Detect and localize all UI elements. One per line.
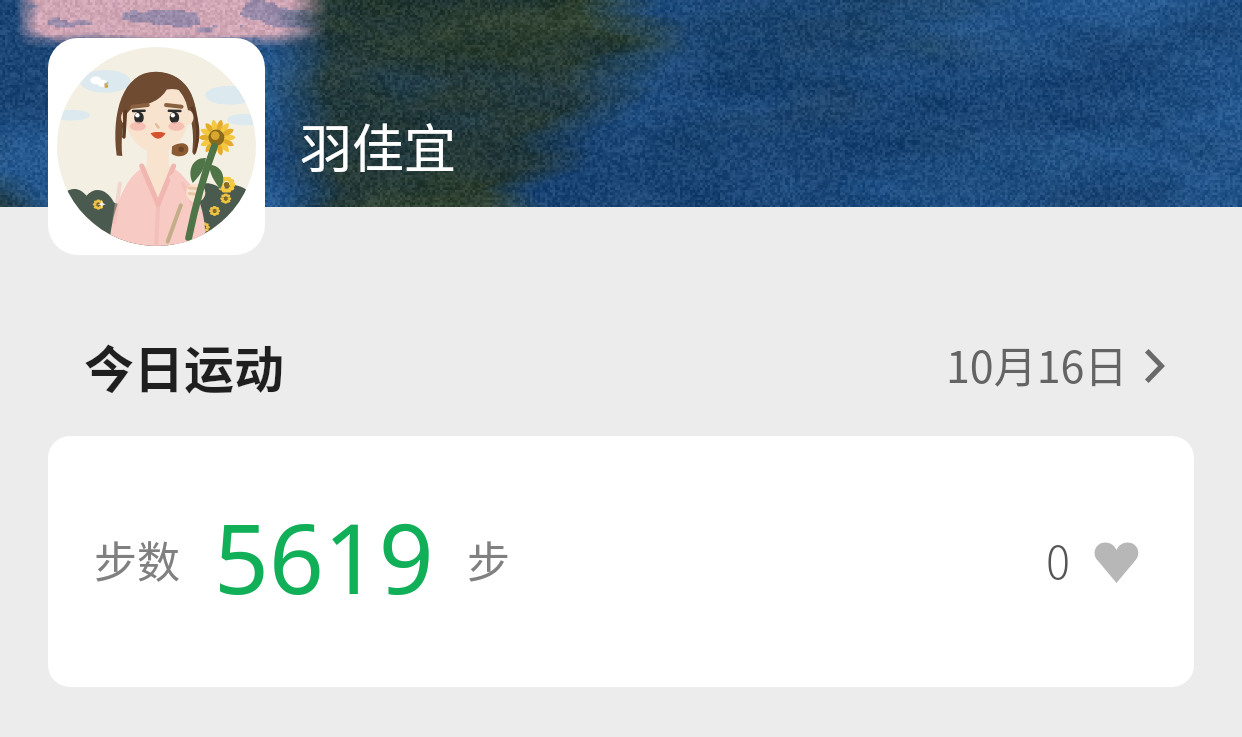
button[interactable]: 步数 bbox=[48, 436, 1194, 687]
button[interactable]: 羽佳宜 bbox=[300, 108, 457, 183]
staticText: 羽佳宜 bbox=[300, 108, 457, 183]
staticText: 5619 bbox=[214, 491, 434, 622]
button[interactable]: Profile photo bbox=[48, 38, 265, 255]
staticText: 步 bbox=[467, 528, 510, 590]
staticText: 步数 bbox=[94, 528, 180, 590]
button[interactable]: Likes bbox=[1093, 542, 1140, 583]
staticText: 今日运动 bbox=[84, 330, 284, 402]
staticText: 0 bbox=[1046, 527, 1071, 592]
button[interactable]: 10月16日 bbox=[946, 327, 1242, 405]
staticText: 10月16日 bbox=[946, 333, 1128, 395]
button[interactable]: 今日运动 bbox=[84, 330, 284, 402]
other: More bbox=[1146, 350, 1164, 382]
